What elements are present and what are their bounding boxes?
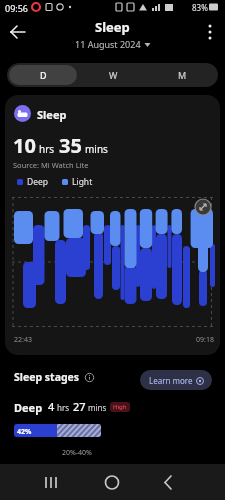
- button[interactable]: D: [9, 65, 77, 85]
- button[interactable]: [31, 464, 71, 500]
- staticText: 83%: [192, 2, 208, 13]
- staticText: Sleep: [95, 18, 130, 36]
- staticText: hrs: [57, 402, 70, 413]
- button[interactable]: [195, 199, 211, 215]
- staticText: mins: [88, 402, 107, 413]
- staticText: Light: [72, 176, 93, 188]
- staticText: Deep: [14, 400, 43, 415]
- staticText: 42%: [17, 427, 32, 437]
- staticText: Sleep: [37, 107, 67, 122]
- staticText: 4: [48, 399, 55, 414]
- staticText: 27: [73, 399, 86, 414]
- button[interactable]: Learn more: [140, 370, 212, 390]
- staticText: High: [113, 403, 127, 411]
- button[interactable]: [92, 464, 132, 500]
- button[interactable]: [14, 424, 101, 437]
- staticText: hrs: [39, 142, 55, 156]
- staticText: 09:56: [5, 2, 29, 14]
- button[interactable]: [197, 18, 223, 46]
- button[interactable]: [148, 464, 188, 500]
- staticText: Sleep stages: [14, 370, 80, 384]
- staticText: Deep: [27, 176, 49, 188]
- staticText: 35: [59, 132, 82, 159]
- button[interactable]: W: [79, 63, 147, 87]
- button[interactable]: [4, 18, 32, 46]
- staticText: D: [40, 69, 47, 81]
- staticText: M: [178, 69, 187, 81]
- button[interactable]: M: [148, 63, 216, 87]
- staticText: 22:43: [14, 335, 32, 345]
- staticText: Source: Mi Watch Lite: [13, 160, 89, 170]
- staticText: 09:18: [196, 335, 214, 345]
- button[interactable]: Sleep: [5, 95, 220, 355]
- staticText: 10: [13, 132, 36, 159]
- button[interactable]: 11 August 2024: [0, 38, 225, 50]
- staticText: 11 August 2024: [75, 38, 141, 50]
- staticText: W: [109, 69, 118, 81]
- staticText: 20%-40%: [62, 448, 92, 458]
- staticText: Learn more: [149, 375, 193, 386]
- staticText: mins: [85, 142, 108, 156]
